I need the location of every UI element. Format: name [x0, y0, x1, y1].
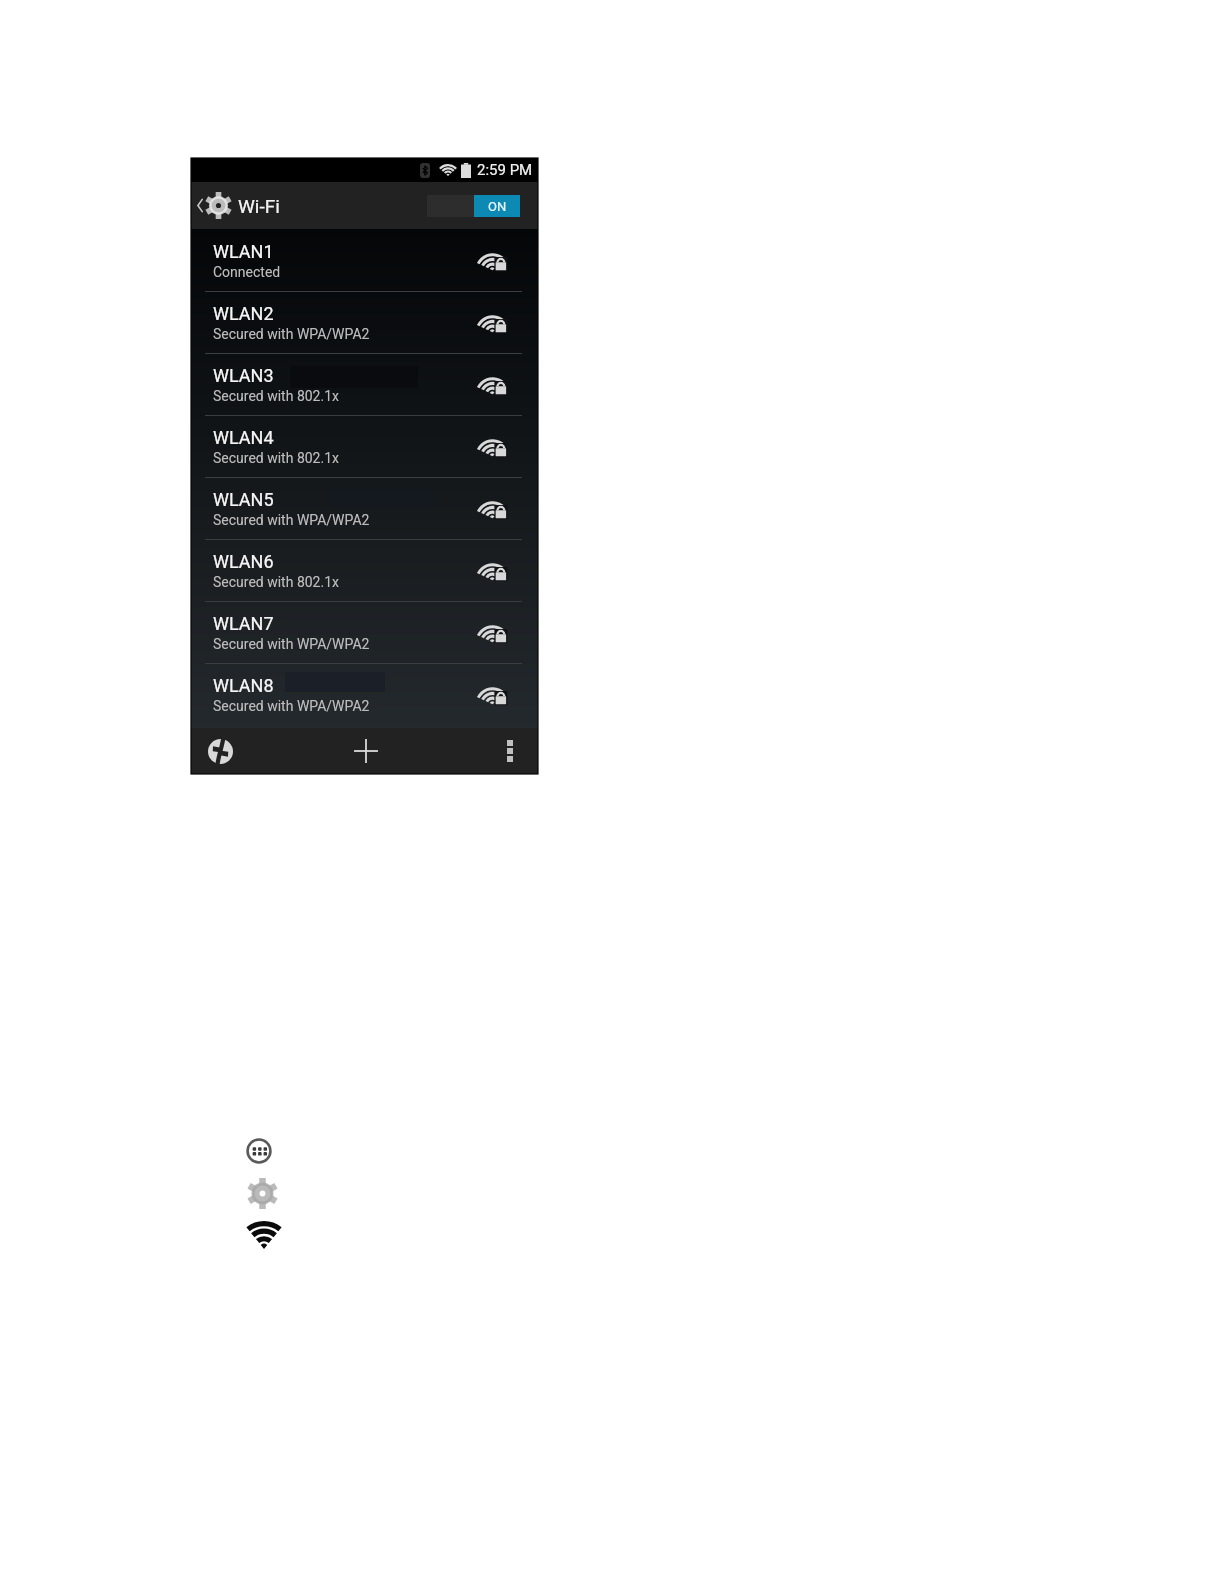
button[interactable]: All apps [246, 1138, 272, 1164]
button[interactable]: More options [481, 728, 538, 774]
staticText: Secured with WPA/WPA2 [213, 326, 370, 342]
button[interactable]: ON [427, 195, 520, 217]
button[interactable]: WLAN2 [191, 291, 538, 353]
staticText: WLAN7 [213, 613, 274, 634]
button[interactable]: WLAN1 [191, 229, 538, 291]
staticText: Secured with 802.1x [213, 388, 339, 404]
staticText: WLAN2 [213, 303, 274, 324]
button[interactable]: Navigate up to Settings [196, 188, 232, 223]
button[interactable]: WLAN8 [191, 663, 538, 725]
button[interactable]: Add network [250, 728, 481, 774]
staticText: 2:59 PM [477, 161, 533, 179]
staticText: Secured with 802.1x [213, 450, 339, 466]
staticText: Wi-Fi [238, 195, 280, 217]
staticText: Secured with WPA/WPA2 [213, 512, 370, 528]
staticText: Connected [213, 264, 281, 280]
staticText: WLAN8 [213, 675, 274, 696]
button[interactable]: Settings [247, 1178, 278, 1209]
staticText: WLAN5 [213, 489, 274, 510]
staticText: WLAN6 [213, 551, 274, 572]
button[interactable]: Wi-Fi [247, 1221, 281, 1249]
button[interactable]: WLAN5 [191, 477, 538, 539]
staticText: WLAN3 [213, 365, 274, 386]
staticText: ON [488, 199, 507, 214]
button[interactable]: WLAN3 [191, 353, 538, 415]
staticText: Secured with WPA/WPA2 [213, 636, 370, 652]
button[interactable]: WLAN6 [191, 539, 538, 601]
button[interactable]: WLAN7 [191, 601, 538, 663]
button[interactable]: WPS push button [191, 728, 250, 774]
staticText: Secured with 802.1x [213, 574, 339, 590]
staticText: Secured with WPA/WPA2 [213, 698, 370, 714]
staticText: WLAN4 [213, 427, 274, 448]
staticText: WLAN1 [213, 241, 274, 262]
button[interactable]: WLAN4 [191, 415, 538, 477]
